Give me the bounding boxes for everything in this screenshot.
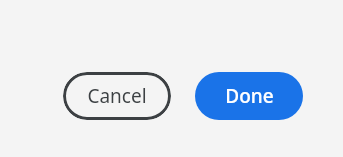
button[interactable]: Done	[195, 72, 303, 120]
staticText: Cancel	[87, 83, 147, 109]
button[interactable]: Cancel	[63, 72, 171, 120]
staticText: Done	[225, 83, 274, 109]
